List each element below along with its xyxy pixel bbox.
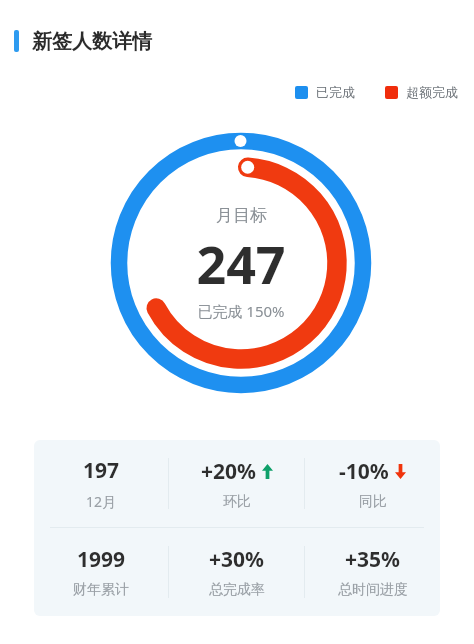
button[interactable]: 1999 (34, 528, 168, 616)
button[interactable]: +35% (305, 528, 440, 616)
other: Decrease (395, 464, 406, 479)
other: Increase (262, 464, 273, 479)
staticText: 财年累计 (73, 581, 129, 599)
staticText: 同比 (359, 493, 387, 511)
staticText: +30% (209, 545, 264, 574)
staticText: 总完成率 (209, 581, 265, 599)
staticText: 超额完成 (406, 84, 458, 100)
staticText: 1999 (77, 545, 126, 574)
button[interactable]: 197 (34, 440, 168, 527)
staticText: 新签人数详情 (32, 29, 152, 54)
button[interactable]: 超额完成 (385, 84, 458, 100)
button[interactable]: +30% (169, 528, 304, 616)
staticText: 月目标 (216, 205, 267, 226)
button[interactable]: -10% (305, 440, 440, 527)
staticText: 已完成 150% (197, 301, 285, 321)
staticText: 总时间进度 (338, 581, 408, 599)
staticText: +20% (201, 457, 256, 486)
staticText: 197 (83, 456, 120, 485)
button[interactable]: 已完成 (295, 84, 355, 100)
button[interactable]: +20% (169, 440, 304, 527)
staticText: -10% (339, 457, 389, 486)
staticText: 已完成 (316, 84, 355, 100)
staticText: 12月 (86, 492, 117, 511)
staticText: 247 (196, 228, 286, 299)
staticText: 环比 (223, 493, 251, 511)
staticText: +35% (345, 545, 400, 574)
